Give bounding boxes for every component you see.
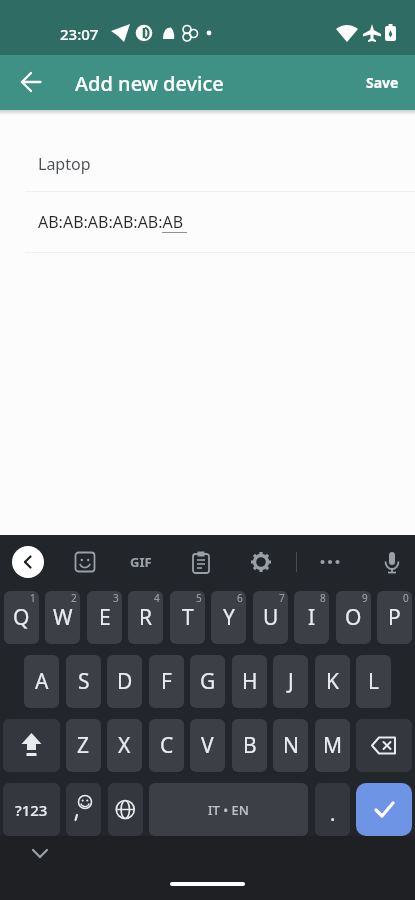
button[interactable]: GIF <box>124 546 158 578</box>
button[interactable]: K <box>315 655 350 708</box>
button[interactable] <box>3 719 60 772</box>
button[interactable]: O <box>336 591 371 644</box>
staticText: GIF <box>130 553 152 571</box>
button[interactable]: T <box>170 591 205 644</box>
button[interactable]: Save <box>366 73 399 92</box>
staticText: S <box>78 667 90 696</box>
button[interactable]: X <box>107 719 142 772</box>
button[interactable]: . <box>315 783 350 836</box>
staticText: Z <box>77 731 90 760</box>
staticText: J <box>288 667 294 696</box>
button[interactable]: B <box>232 719 267 772</box>
button[interactable]: W <box>45 591 80 644</box>
button[interactable]: Z <box>66 719 101 772</box>
staticText: 1 <box>30 591 36 605</box>
button[interactable] <box>356 783 412 836</box>
staticText: R <box>139 603 153 632</box>
staticText: V <box>201 731 214 760</box>
button[interactable]: E <box>87 591 122 644</box>
button[interactable]: IT • EN <box>149 783 308 836</box>
button[interactable] <box>314 546 346 578</box>
staticText: Add new device <box>75 70 224 97</box>
button[interactable] <box>7 58 55 106</box>
staticText: 8 <box>320 591 326 605</box>
button[interactable] <box>12 546 44 578</box>
button[interactable]: M <box>315 719 350 772</box>
button[interactable]: I <box>294 591 329 644</box>
button[interactable] <box>245 546 277 578</box>
button[interactable]: U <box>253 591 288 644</box>
staticText: P <box>388 603 401 632</box>
staticText: H <box>242 667 258 696</box>
button[interactable]: D <box>107 655 142 708</box>
button[interactable]: H <box>232 655 267 708</box>
staticText: U <box>263 603 279 632</box>
staticText: L <box>368 667 380 696</box>
button[interactable]: Q <box>4 591 39 644</box>
button[interactable]: C <box>149 719 184 772</box>
staticText: AB:AB:AB:AB:AB:AB <box>38 211 184 233</box>
staticText: T <box>182 603 194 632</box>
button[interactable]: G <box>190 655 225 708</box>
staticText: B <box>243 731 257 760</box>
button[interactable]: A <box>24 655 59 708</box>
button[interactable]: Y <box>211 591 246 644</box>
button[interactable]: Laptop <box>0 131 415 193</box>
staticText: 7 <box>279 591 285 605</box>
staticText: O <box>345 603 362 632</box>
button[interactable]: P <box>377 591 412 644</box>
staticText: K <box>326 667 339 696</box>
staticText: 9 <box>362 591 368 605</box>
button[interactable]: ?123 <box>3 783 60 836</box>
staticText: Laptop <box>38 153 91 175</box>
staticText: D <box>117 667 133 696</box>
button[interactable] <box>376 546 408 578</box>
button[interactable]: J <box>273 655 308 708</box>
staticText: 6 <box>237 591 243 605</box>
staticText: E <box>99 603 111 632</box>
button[interactable] <box>108 783 143 836</box>
staticText: N <box>283 731 299 760</box>
button[interactable]: S <box>66 655 101 708</box>
button[interactable]: AB:AB:AB:AB:AB:AB <box>0 200 415 250</box>
staticText: A <box>35 667 49 696</box>
staticText: X <box>118 731 131 760</box>
staticText: I <box>308 603 316 632</box>
button[interactable] <box>356 719 412 772</box>
staticText: F <box>161 667 172 696</box>
button[interactable]: V <box>190 719 225 772</box>
staticText: 5 <box>196 591 202 605</box>
button[interactable] <box>20 838 60 868</box>
staticText: C <box>160 731 174 760</box>
staticText: 2 <box>71 591 77 605</box>
staticText: 0 <box>403 591 409 605</box>
button[interactable] <box>185 546 217 578</box>
staticText: W <box>53 603 73 632</box>
button[interactable]: R <box>128 591 163 644</box>
staticText: M <box>323 731 343 760</box>
staticText: 3 <box>113 591 119 605</box>
staticText: IT • EN <box>208 801 249 819</box>
staticText: 23:07 <box>60 24 99 44</box>
staticText: 4 <box>154 591 160 605</box>
staticText: Save <box>366 73 399 92</box>
staticText: ?123 <box>15 800 48 820</box>
button[interactable] <box>66 783 101 836</box>
staticText: . <box>330 800 336 827</box>
button[interactable] <box>69 546 101 578</box>
button[interactable]: F <box>149 655 184 708</box>
staticText: Q <box>13 603 30 632</box>
button[interactable]: L <box>356 655 391 708</box>
staticText: Y <box>223 603 235 632</box>
button[interactable]: N <box>273 719 308 772</box>
staticText: G <box>200 667 216 696</box>
